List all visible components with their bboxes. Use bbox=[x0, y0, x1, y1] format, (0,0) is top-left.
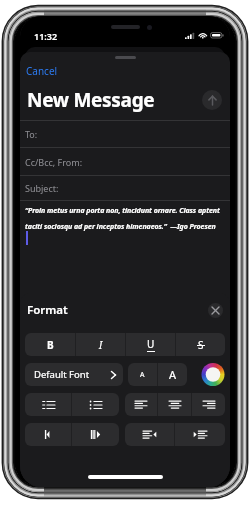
staticText: “Proin metus urna porta non, tincidunt o… bbox=[25, 206, 226, 231]
staticText: I bbox=[99, 338, 103, 352]
button[interactable]: Italic bbox=[76, 333, 125, 356]
button[interactable]: Increase font size bbox=[158, 363, 187, 386]
button[interactable]: Decrease font size bbox=[128, 363, 157, 386]
button[interactable]: To: bbox=[25, 121, 230, 147]
button[interactable]: Align center bbox=[158, 393, 191, 416]
button[interactable]: Cancel bbox=[22, 62, 62, 78]
staticText: S bbox=[198, 338, 204, 352]
button[interactable]: Subject: bbox=[25, 176, 230, 200]
staticText: New Message bbox=[27, 87, 155, 113]
button[interactable]: Text colour bbox=[199, 363, 227, 386]
staticText: Format bbox=[27, 302, 68, 318]
button[interactable]: Tab right bbox=[72, 423, 119, 446]
button[interactable]: Tab left bbox=[25, 423, 71, 446]
button[interactable]: Bulleted list bbox=[72, 393, 119, 416]
staticText: Cc/Bcc, From: bbox=[25, 156, 83, 168]
button[interactable]: Underline bbox=[126, 333, 175, 356]
button[interactable]: Default Font bbox=[25, 363, 123, 386]
staticText: U bbox=[147, 337, 155, 351]
staticText: Cancel bbox=[26, 64, 58, 76]
staticText: 11:32 bbox=[34, 30, 58, 42]
button[interactable]: Bold bbox=[25, 333, 75, 356]
button[interactable]: Strikethrough bbox=[176, 333, 225, 356]
button[interactable]: Numbered list bbox=[25, 393, 71, 416]
button[interactable]: Decrease indent bbox=[125, 423, 174, 446]
button[interactable]: Align left bbox=[125, 393, 157, 416]
staticText: A bbox=[140, 370, 145, 380]
button[interactable]: Cc/Bcc, From: bbox=[25, 148, 230, 175]
button[interactable]: Increase indent bbox=[175, 423, 225, 446]
button[interactable]: Close format panel bbox=[208, 303, 223, 318]
button[interactable]: Align right bbox=[192, 393, 225, 416]
button[interactable]: Send bbox=[202, 90, 222, 110]
staticText: To: bbox=[25, 128, 38, 140]
staticText: Default Font bbox=[34, 368, 90, 381]
staticText: A bbox=[169, 367, 177, 382]
staticText: B bbox=[47, 338, 54, 352]
staticText: Subject: bbox=[25, 182, 59, 194]
